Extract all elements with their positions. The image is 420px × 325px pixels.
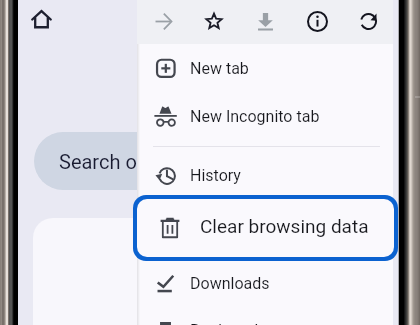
staticText: New Incognito tab bbox=[190, 107, 320, 126]
button[interactable]: Home bbox=[31, 9, 52, 30]
button[interactable]: New Incognito tab bbox=[137, 93, 393, 140]
button[interactable]: Search or type URL bbox=[34, 132, 264, 190]
button[interactable]: Downloads bbox=[137, 260, 393, 307]
staticText: History bbox=[190, 166, 241, 185]
button[interactable]: Forward bbox=[141, 0, 185, 43]
staticText: Search or type URL bbox=[59, 150, 228, 173]
button[interactable]: Download page bbox=[243, 0, 287, 43]
button[interactable]: Bookmark this page bbox=[192, 0, 236, 43]
button[interactable]: Clear browsing data bbox=[137, 199, 394, 257]
staticText: Bookmarks bbox=[190, 321, 271, 325]
button[interactable]: Page info bbox=[295, 0, 339, 43]
button[interactable]: History bbox=[137, 152, 393, 199]
button[interactable]: New tab bbox=[137, 45, 393, 92]
staticText: Clear browsing data bbox=[200, 215, 369, 237]
button[interactable]: Bookmarks bbox=[137, 307, 393, 325]
button[interactable]: Reload bbox=[346, 0, 390, 43]
staticText: New tab bbox=[190, 59, 249, 78]
staticText: Downloads bbox=[190, 274, 270, 293]
